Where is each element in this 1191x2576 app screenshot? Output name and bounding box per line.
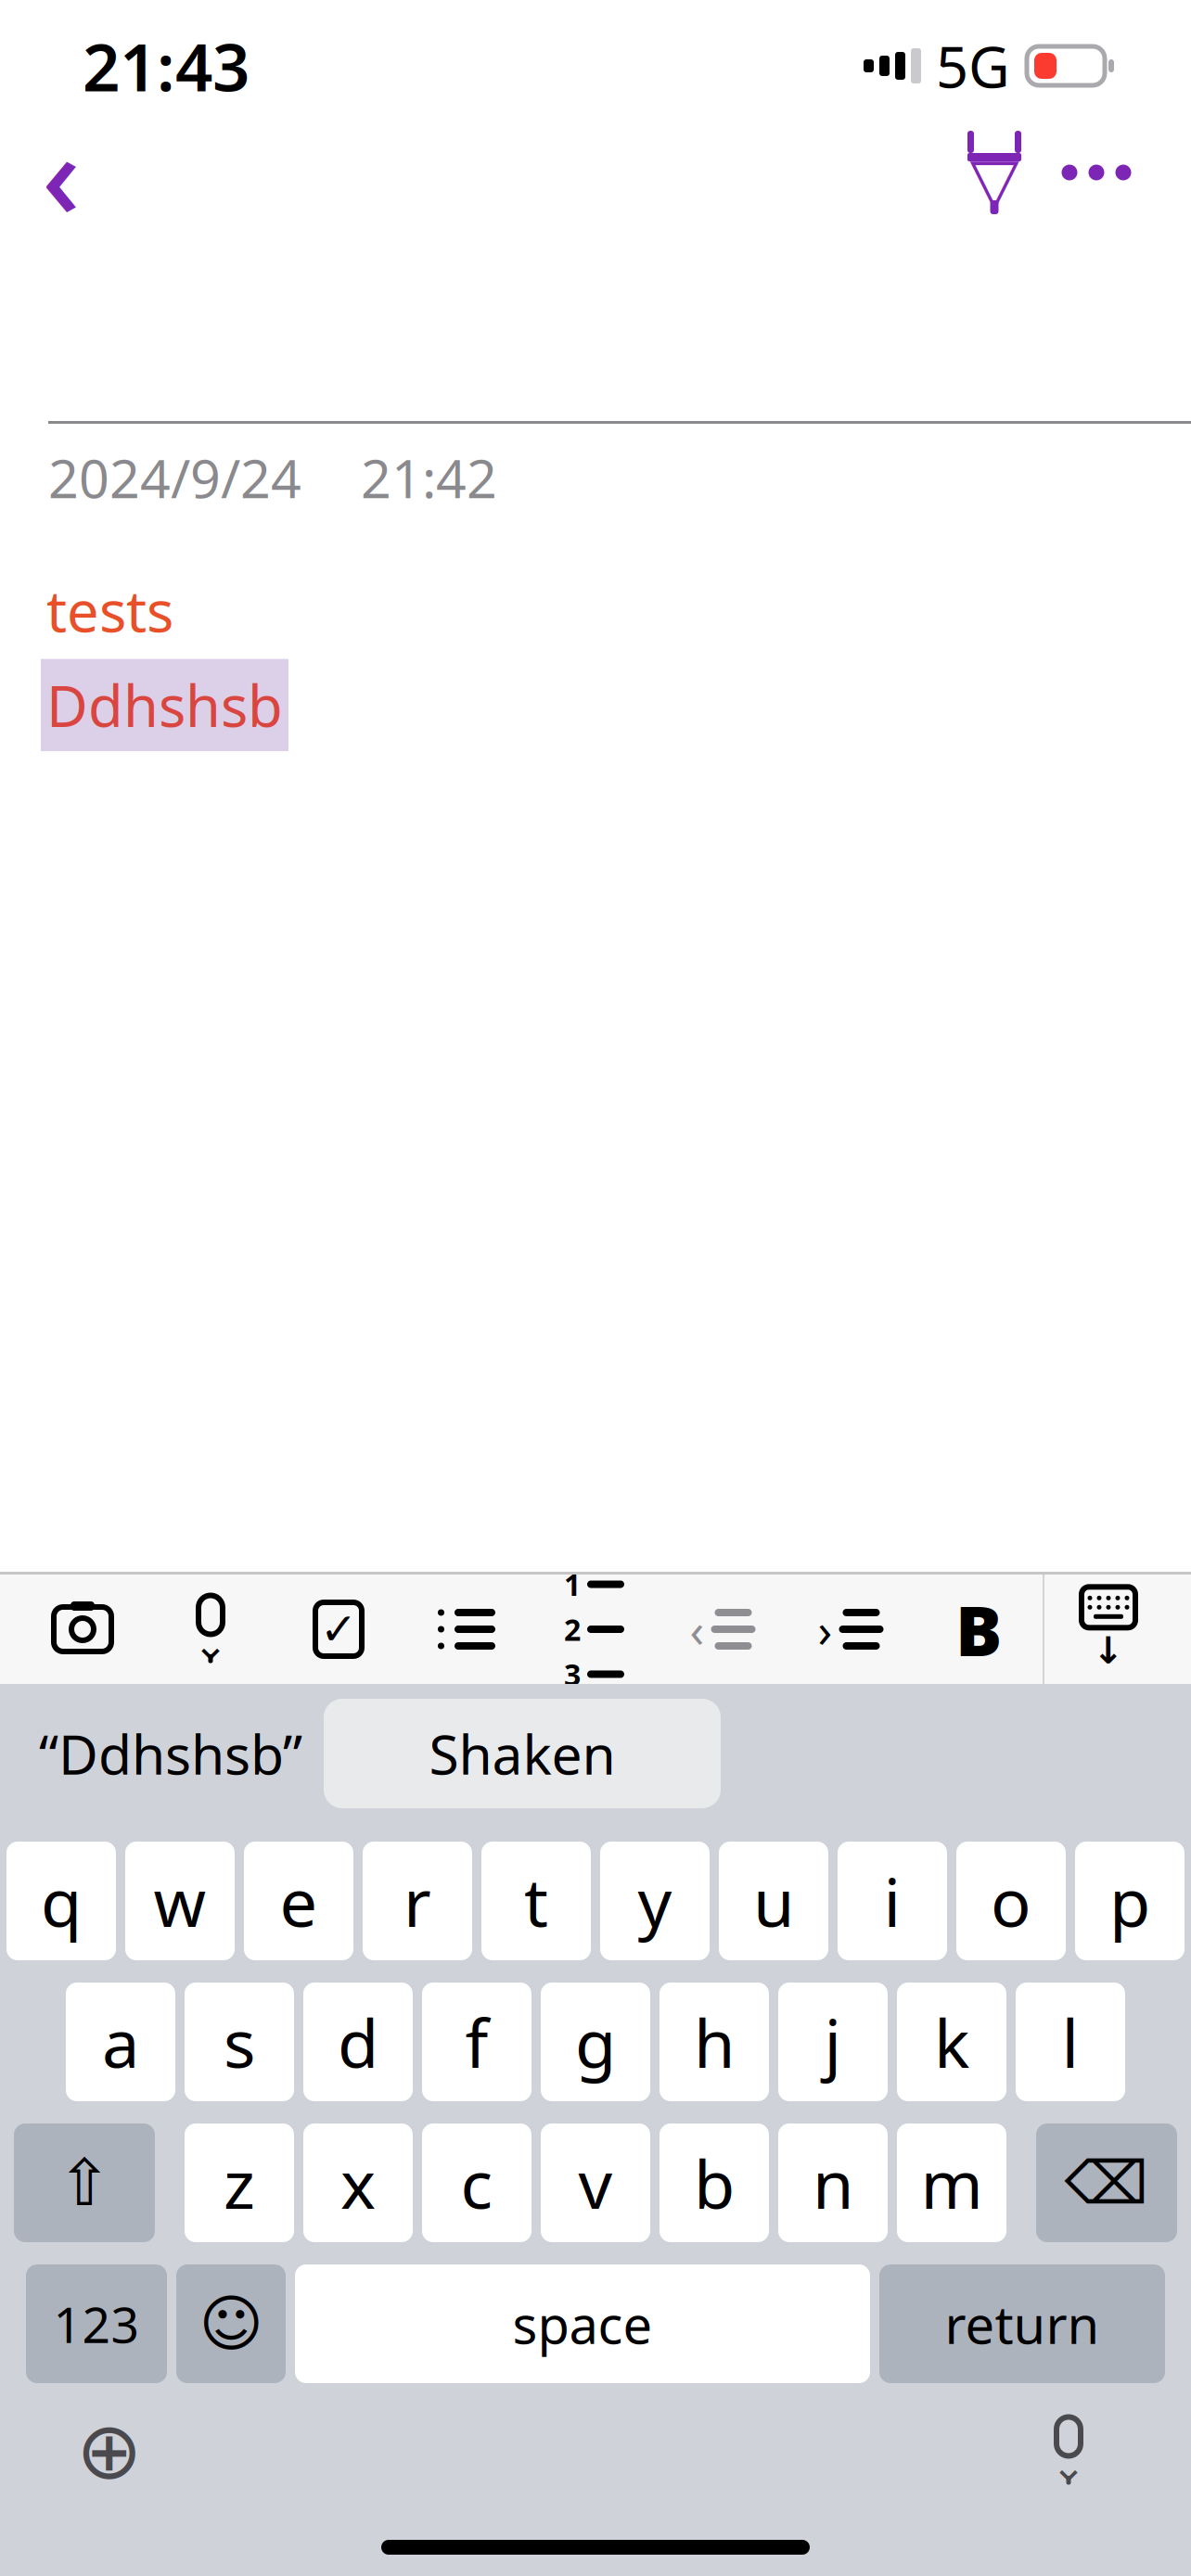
button[interactable]: m [897, 2123, 1006, 2242]
button[interactable]: e [244, 1842, 353, 1960]
button[interactable]: Indent [787, 1575, 915, 1684]
staticText: tests [46, 572, 173, 648]
button[interactable]: More options [1045, 119, 1147, 226]
button[interactable]: w [125, 1842, 235, 1960]
staticText: j [824, 1998, 842, 2086]
button[interactable]: Emoji [176, 2264, 286, 2383]
staticText: ‹ [690, 1598, 704, 1660]
staticText: 5G [936, 28, 1010, 104]
staticText: Ddhshsb [46, 667, 283, 743]
button[interactable]: a [66, 1983, 175, 2101]
staticText: r [403, 1857, 431, 1945]
staticText: l [1062, 1998, 1079, 2086]
staticText: z [224, 2139, 255, 2227]
button[interactable]: r [363, 1842, 472, 1960]
staticText: c [461, 2139, 493, 2227]
staticText: ☺ [199, 2289, 263, 2359]
staticText: f [465, 1998, 488, 2086]
button[interactable]: Highlighter [943, 119, 1045, 226]
button[interactable]: Back [10, 119, 112, 226]
button[interactable]: s [185, 1983, 294, 2101]
staticText: 2024/9/24 [48, 442, 301, 513]
button[interactable]: Shift [14, 2123, 155, 2242]
button[interactable]: Camera [19, 1575, 147, 1684]
staticText: h [694, 1998, 735, 2086]
staticText: 2 [564, 1610, 581, 1649]
button[interactable]: Dictation [147, 1575, 275, 1684]
button[interactable]: Space [295, 2264, 870, 2383]
button[interactable]: p [1075, 1842, 1185, 1960]
staticText: v [578, 2139, 613, 2227]
staticText: ⌄ [1051, 2442, 1086, 2490]
staticText: B [955, 1583, 1002, 1675]
staticText: 21:42 [361, 442, 497, 513]
button[interactable]: h [660, 1983, 769, 2101]
staticText: › [818, 1598, 832, 1660]
staticText: o [991, 1857, 1031, 1945]
button[interactable]: “Ddhshsb” [18, 1699, 324, 1808]
button[interactable]: u [719, 1842, 828, 1960]
button[interactable]: z [185, 2123, 294, 2242]
button[interactable]: v [541, 2123, 650, 2242]
staticText: d [338, 1998, 378, 2086]
button[interactable]: Outdent [659, 1575, 787, 1684]
button[interactable]: Hide keyboard [1044, 1575, 1172, 1684]
button[interactable]: b [660, 2123, 769, 2242]
staticText: ⊕ [76, 2406, 143, 2496]
button[interactable]: Next keyboard [58, 2400, 160, 2502]
button[interactable]: t [481, 1842, 591, 1960]
staticText: t [524, 1857, 548, 1945]
staticText: space [512, 2289, 653, 2358]
button[interactable]: Dictation [1018, 2400, 1120, 2502]
button[interactable]: Shaken [324, 1699, 721, 1808]
staticText: m [921, 2139, 983, 2227]
staticText: 3 [564, 1654, 581, 1694]
staticText: x [340, 2139, 376, 2227]
staticText: e [280, 1857, 318, 1945]
button[interactable]: o [956, 1842, 1066, 1960]
staticText: q [41, 1857, 82, 1945]
staticText: “Ddhshsb” [39, 1717, 302, 1790]
button[interactable]: Bold [915, 1575, 1043, 1684]
staticText: ⌫ [1064, 2149, 1149, 2216]
button[interactable]: Return [879, 2264, 1165, 2383]
button[interactable]: Bulleted list [403, 1575, 531, 1684]
staticText: u [753, 1857, 794, 1945]
button[interactable]: f [422, 1983, 531, 2101]
staticText: p [1109, 1857, 1150, 1945]
staticText: ▽ [970, 144, 1019, 217]
staticText: a [102, 1998, 139, 2086]
button[interactable]: c [422, 2123, 531, 2242]
button[interactable]: i [838, 1842, 947, 1960]
staticText: i [884, 1857, 901, 1945]
staticText: w [154, 1857, 206, 1945]
staticText: 123 [53, 2291, 140, 2357]
button[interactable]: n [778, 2123, 888, 2242]
button[interactable]: y [600, 1842, 710, 1960]
staticText: ↓ [1093, 1630, 1124, 1672]
staticText: ⌄ [193, 1621, 228, 1668]
button[interactable]: Delete [1036, 2123, 1177, 2242]
staticText: n [813, 2139, 853, 2227]
button[interactable]: Numbered list [531, 1575, 659, 1684]
button[interactable]: l [1016, 1983, 1125, 2101]
staticText: y [638, 1857, 672, 1945]
button[interactable]: k [897, 1983, 1006, 2101]
staticText: ⇧ [58, 2146, 111, 2219]
staticText: Shaken [429, 1717, 615, 1790]
button[interactable]: Numbers [26, 2264, 167, 2383]
button[interactable]: j [778, 1983, 888, 2101]
staticText: ✓ [320, 1604, 357, 1655]
staticText: g [575, 1998, 616, 2086]
button[interactable]: Checklist [275, 1575, 403, 1684]
staticText: s [224, 1998, 255, 2086]
button[interactable]: q [6, 1842, 116, 1960]
staticText: return [945, 2289, 1100, 2358]
button[interactable]: d [303, 1983, 413, 2101]
staticText: b [694, 2139, 735, 2227]
button[interactable]: x [303, 2123, 413, 2242]
button[interactable]: g [541, 1983, 650, 2101]
staticText: k [934, 1998, 969, 2086]
staticText: 21:43 [83, 22, 250, 109]
staticText: ‹ [42, 94, 81, 251]
